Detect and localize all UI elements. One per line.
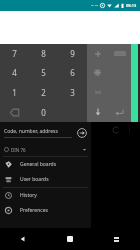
button[interactable]: Recent apps — [93, 228, 140, 250]
staticText: 08:13 — [126, 3, 137, 8]
button[interactable]: Shift — [87, 82, 108, 102]
button[interactable]: More options — [124, 125, 134, 135]
button[interactable]: Backspace — [0, 102, 29, 122]
staticText: 7 — [12, 48, 17, 59]
button[interactable]: Home — [46, 228, 93, 250]
staticText: 3 — [70, 87, 75, 98]
staticText: 5 — [41, 67, 46, 78]
button[interactable]: Refresh — [111, 125, 121, 135]
button[interactable]: 7 — [0, 44, 29, 63]
button[interactable]: Search — [76, 127, 88, 139]
button[interactable]: User boards — [0, 172, 91, 187]
button[interactable]: Enter — [108, 102, 131, 122]
button[interactable]: 5 — [29, 63, 58, 82]
staticText: 4 — [12, 67, 17, 78]
staticText: 8 — [41, 48, 46, 59]
staticText: User boards — [20, 176, 49, 183]
button[interactable]: 9 — [58, 44, 87, 63]
staticText: General boards — [20, 161, 57, 168]
button[interactable]: Add — [87, 44, 108, 63]
button[interactable]: DIN 76 — [0, 143, 91, 156]
staticText: 2 — [41, 87, 46, 98]
button[interactable]: Hide keyboard — [87, 102, 108, 122]
button[interactable]: 0 — [29, 102, 58, 122]
staticText: History — [20, 192, 37, 199]
staticText: 6 — [70, 67, 75, 78]
button[interactable]: 6 — [58, 63, 87, 82]
button[interactable]: General boards — [0, 157, 91, 172]
staticText: Code, number, address — [4, 128, 58, 135]
button[interactable]: 3 — [58, 82, 87, 102]
button[interactable]: Preferences — [0, 203, 91, 218]
button[interactable]: Asterisk — [87, 63, 108, 82]
button[interactable]: 8 — [29, 44, 58, 63]
button[interactable]: Back — [0, 228, 46, 250]
staticText: Preferences — [20, 207, 48, 214]
staticText: 0 — [41, 107, 46, 118]
button[interactable]: Clear — [108, 44, 131, 63]
button[interactable]: History — [0, 188, 91, 203]
button[interactable]: 1 — [0, 82, 29, 102]
staticText: 9 — [70, 48, 75, 59]
button[interactable]: 4 — [0, 63, 29, 82]
staticText: DIN 76 — [11, 147, 82, 153]
button[interactable]: 2 — [29, 82, 58, 102]
staticText: 1 — [12, 87, 17, 98]
